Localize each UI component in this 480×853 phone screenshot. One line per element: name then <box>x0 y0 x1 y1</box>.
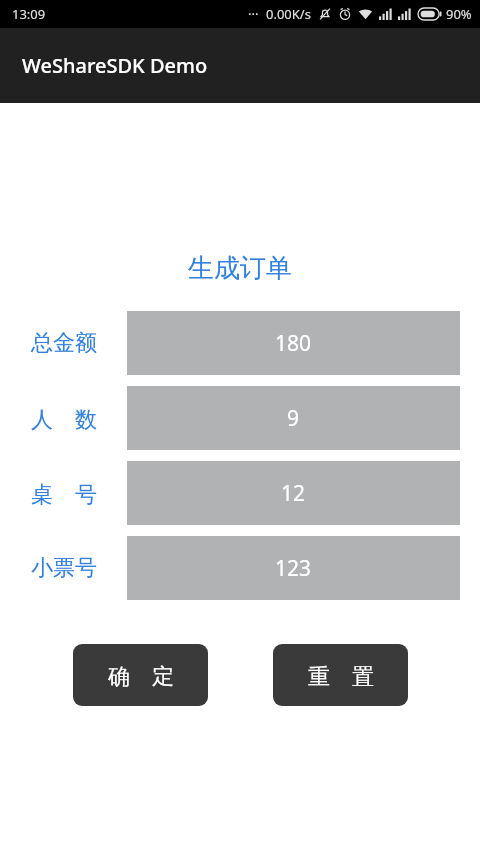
button[interactable]: 123 <box>127 536 460 600</box>
other: Alarm set <box>338 7 352 21</box>
staticText: 桌 号 <box>31 478 97 508</box>
staticText: 13:09 <box>12 5 46 23</box>
other: Signal <box>398 8 412 20</box>
staticText: 生成订单 <box>188 252 292 285</box>
staticText: 重 置 <box>308 660 374 690</box>
staticText: 90% <box>446 5 472 23</box>
button[interactable]: 180 <box>127 311 460 375</box>
staticText: 确 定 <box>108 660 174 690</box>
staticText: 123 <box>275 554 312 583</box>
other: Battery 90 percent <box>418 8 442 20</box>
other: Silent mode <box>318 7 332 21</box>
staticText: ··· <box>248 5 259 23</box>
staticText: 总金额 <box>31 329 97 357</box>
other: Wi-Fi <box>358 7 373 22</box>
staticText: 9 <box>287 404 300 433</box>
staticText: 人 数 <box>31 403 97 433</box>
other: Signal <box>379 8 393 20</box>
staticText: 180 <box>275 329 312 358</box>
button[interactable]: 确 定 <box>73 644 208 706</box>
staticText: WeShareSDK Demo <box>22 52 208 79</box>
button[interactable]: 重 置 <box>273 644 408 706</box>
staticText: 12 <box>281 479 306 508</box>
staticText: 小票号 <box>31 554 97 582</box>
button[interactable]: 9 <box>127 386 460 450</box>
staticText: 0.00K/s <box>266 5 311 23</box>
button[interactable]: 12 <box>127 461 460 525</box>
